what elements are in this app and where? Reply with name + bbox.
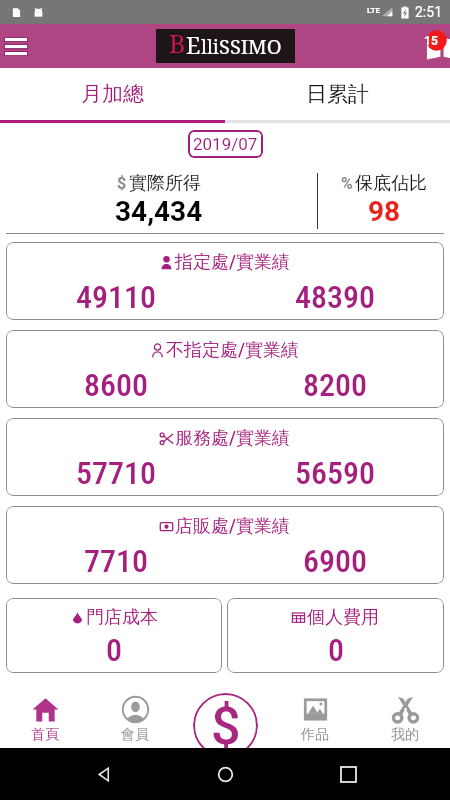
staticText: 2019/07 — [193, 134, 258, 154]
button[interactable]: 會員 — [90, 673, 180, 748]
staticText: 48390 — [295, 278, 375, 316]
button[interactable]: Recents — [328, 754, 368, 794]
staticText: 指定處/實業績 — [175, 251, 291, 274]
button[interactable]: 我的 — [360, 673, 450, 748]
staticText: 作品 — [301, 726, 329, 744]
staticText: 服務處/實業績 — [175, 427, 291, 450]
button[interactable]: 門店成本 — [6, 598, 222, 673]
staticText: 0 — [106, 631, 122, 669]
button[interactable]: 不指定處/實業績 — [6, 330, 444, 408]
staticText: 0 — [328, 631, 344, 669]
staticText: 98 — [368, 195, 401, 228]
button[interactable]: 店販處/實業績 — [6, 506, 444, 584]
staticText: 49110 — [76, 278, 156, 316]
staticText: 56590 — [295, 454, 375, 492]
staticText: 6900 — [303, 542, 367, 580]
button[interactable]: Menu — [0, 24, 38, 68]
staticText: $ — [117, 174, 127, 193]
button[interactable]: 首頁 — [0, 673, 90, 748]
staticText: LTE — [367, 6, 380, 15]
staticText: 2:51 — [415, 4, 442, 20]
staticText: lli — [201, 34, 219, 60]
button[interactable]: Money — [193, 693, 258, 758]
staticText: 8200 — [303, 366, 367, 404]
button[interactable]: 服務處/實業績 — [6, 418, 444, 496]
staticText: 會員 — [121, 726, 149, 744]
button[interactable]: Back — [83, 754, 123, 794]
staticText: 34,434 — [115, 195, 203, 228]
staticText: B — [169, 26, 186, 60]
staticText: 個人費用 — [307, 606, 379, 629]
button[interactable]: Notifications — [406, 24, 450, 68]
button[interactable]: 2019/07 — [188, 130, 263, 158]
staticText: 不指定處/實業績 — [166, 339, 300, 362]
staticText: 月加總 — [81, 81, 144, 107]
staticText: SSIMO — [219, 33, 282, 60]
staticText: % — [341, 174, 353, 193]
button[interactable]: 月加總 — [0, 68, 225, 120]
staticText: 15 — [424, 34, 438, 48]
staticText: 8600 — [84, 366, 148, 404]
staticText: 日累計 — [306, 81, 369, 107]
button[interactable]: 作品 — [270, 673, 360, 748]
staticText: 店販處/實業績 — [175, 515, 291, 538]
staticText: 實際所得 — [129, 172, 201, 195]
staticText: $ — [211, 696, 241, 757]
button[interactable]: Home — [205, 754, 245, 794]
button[interactable]: 指定處/實業績 — [6, 242, 444, 320]
staticText: 首頁 — [31, 726, 59, 744]
button[interactable]: 日累計 — [225, 68, 450, 120]
staticText: E — [186, 29, 201, 60]
staticText: 保底佔比 — [355, 172, 427, 195]
staticText: 門店成本 — [86, 606, 158, 629]
button[interactable]: 個人費用 — [227, 598, 444, 673]
staticText: 我的 — [391, 726, 419, 744]
staticText: 57710 — [76, 454, 156, 492]
staticText: 7710 — [84, 542, 148, 580]
